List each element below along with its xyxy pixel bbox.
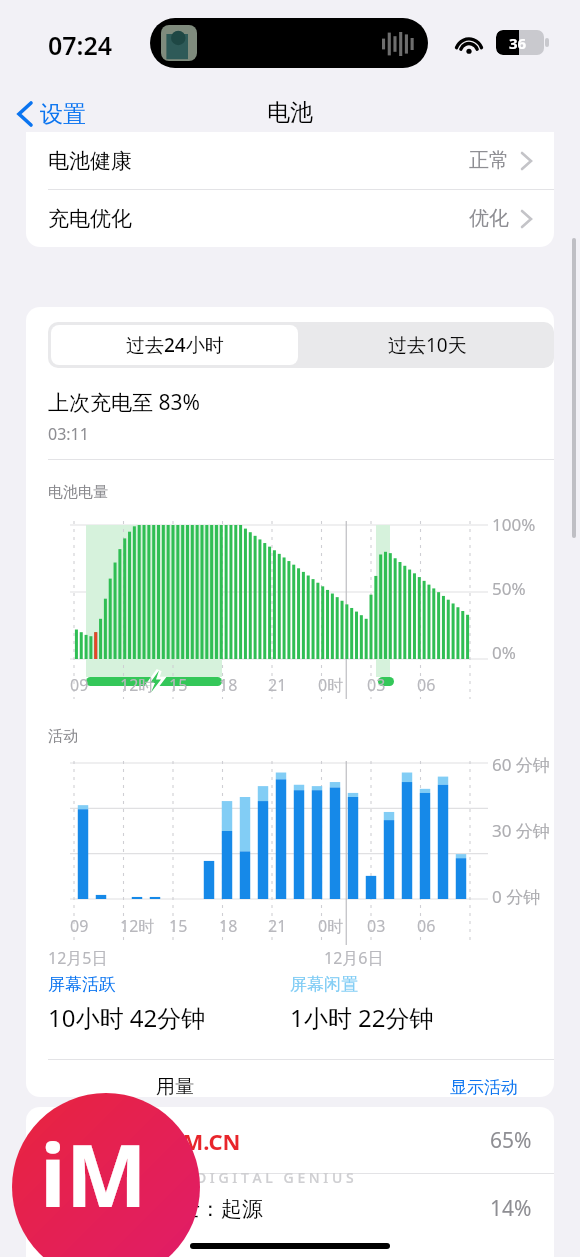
- staticText: 12月5日: [48, 947, 108, 969]
- staticText: 电池电量: [48, 483, 108, 502]
- staticText: iM: [40, 1115, 147, 1232]
- staticText: 50%: [492, 577, 526, 600]
- button[interactable]: 城与勇士：起源: [26, 1175, 554, 1242]
- staticText: 18: [219, 674, 238, 696]
- staticText: 1小时 22分钟: [290, 1001, 434, 1034]
- staticText: 电池: [0, 98, 580, 127]
- staticText: 正常: [469, 148, 509, 173]
- staticText: 21: [268, 915, 287, 937]
- staticText: 14%: [490, 1194, 532, 1223]
- staticText: 城与勇士：起源: [116, 1196, 263, 1222]
- staticText: 09: [70, 915, 89, 937]
- staticText: 03: [367, 674, 386, 696]
- staticText: 显示活动: [450, 1077, 518, 1097]
- staticText: 100%: [492, 513, 536, 536]
- staticText: MAVOM.CN: [116, 1126, 241, 1156]
- staticText: 36: [509, 33, 527, 53]
- button[interactable]: 充电优化: [26, 190, 554, 247]
- staticText: 10小时 42分钟: [48, 1001, 206, 1034]
- staticText: 15: [169, 674, 188, 696]
- staticText: 活动: [48, 727, 78, 746]
- staticText: 07:24: [48, 28, 113, 62]
- staticText: 30 分钟: [492, 819, 550, 842]
- staticText: 12时: [120, 674, 155, 696]
- staticText: 充电优化: [48, 206, 132, 232]
- staticText: 09: [70, 674, 89, 696]
- button[interactable]: 过去24小时: [51, 325, 298, 365]
- staticText: 21: [268, 674, 287, 696]
- staticText: 过去10天: [388, 332, 467, 358]
- button[interactable]: 返回 设置: [10, 90, 94, 138]
- staticText: 15: [169, 915, 188, 937]
- staticText: 12时: [120, 915, 155, 937]
- staticText: 06: [417, 915, 436, 937]
- button[interactable]: MAVOM.CN: [26, 1107, 554, 1174]
- staticText: 0%: [492, 641, 516, 664]
- staticText: 03:11: [48, 423, 89, 445]
- staticText: 屏幕闲置: [290, 974, 358, 995]
- staticText: 电池健康: [48, 148, 132, 174]
- staticText: 屏幕活跃: [48, 974, 116, 995]
- staticText: 上次充电至 83%: [48, 388, 200, 417]
- button[interactable]: 显示活动: [450, 1077, 518, 1097]
- staticText: 0时: [318, 915, 344, 937]
- staticText: 18: [219, 915, 238, 937]
- button[interactable]: 电池健康: [26, 132, 554, 189]
- staticText: 0 分钟: [492, 885, 541, 908]
- staticText: 过去24小时: [126, 332, 224, 358]
- staticText: 65%: [490, 1126, 532, 1155]
- staticText: D I G I T A L G E N I U S: [196, 1168, 354, 1187]
- staticText: 03: [367, 915, 386, 937]
- staticText: 60 分钟: [492, 753, 550, 776]
- staticText: 用量: [156, 1075, 194, 1097]
- staticText: 优化: [469, 206, 509, 231]
- staticText: 12月6日: [324, 947, 384, 969]
- staticText: 设置: [40, 100, 86, 129]
- staticText: 0时: [318, 674, 344, 696]
- button[interactable]: 过去10天: [301, 322, 554, 368]
- staticText: 06: [417, 674, 436, 696]
